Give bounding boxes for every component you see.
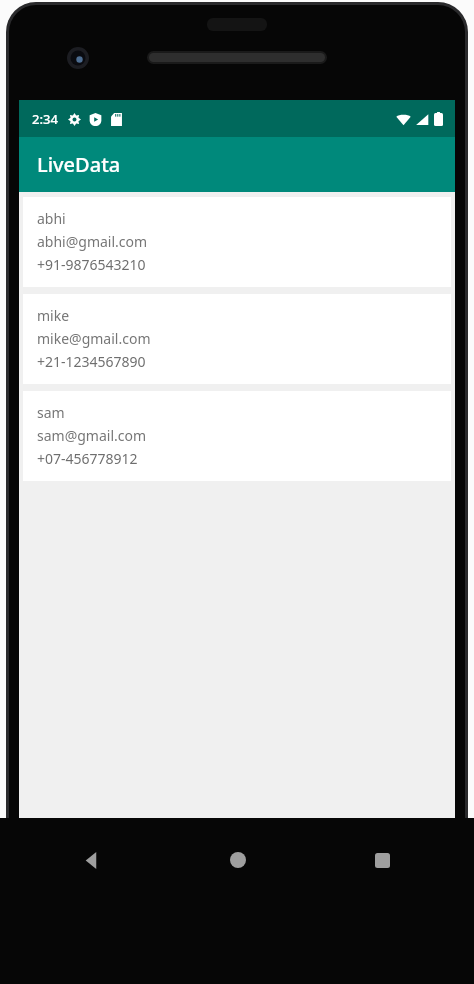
staticText: abhi@gmail.com	[37, 232, 148, 251]
staticText: abhi	[37, 209, 66, 228]
staticText: mike	[37, 306, 70, 325]
staticText: sam	[37, 403, 65, 422]
staticText: LiveData	[37, 151, 121, 178]
staticText: 2:34	[32, 110, 58, 128]
button[interactable]: sam	[23, 391, 451, 481]
button[interactable]: mike	[23, 294, 451, 384]
button[interactable]: abhi	[23, 197, 451, 287]
staticText: +21-1234567890	[37, 352, 146, 371]
staticText: +07-456778912	[37, 449, 138, 468]
button[interactable]: Recent apps	[310, 838, 455, 882]
staticText: +91-9876543210	[37, 255, 146, 274]
staticText: mike@gmail.com	[37, 329, 151, 348]
button[interactable]: Home	[165, 838, 310, 882]
button[interactable]: Back	[19, 838, 165, 882]
staticText: sam@gmail.com	[37, 426, 147, 445]
